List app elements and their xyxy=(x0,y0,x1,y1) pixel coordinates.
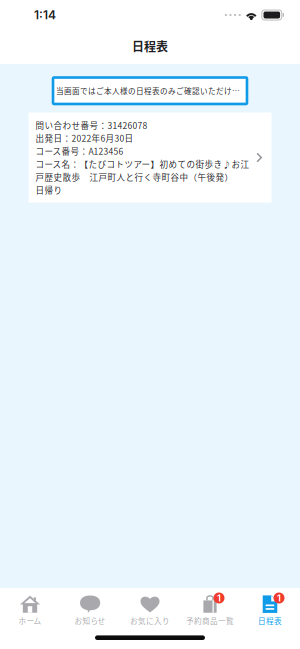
button[interactable]: 問い合わせ番号：31426078 xyxy=(28,112,271,203)
staticText: お知らせ xyxy=(74,615,105,626)
button[interactable]: ホーム xyxy=(0,588,60,629)
staticText: ホーム xyxy=(18,615,41,626)
staticText: 1:14 xyxy=(34,8,56,22)
staticText: 1 xyxy=(217,592,221,604)
staticText: コース番号：A123456 xyxy=(35,145,123,157)
staticText: 問い合わせ番号：31426078 xyxy=(35,119,147,131)
staticText: 戸歴史散歩 江戸町人と行く寺町谷中（午後発） xyxy=(35,171,233,183)
staticText: 日程表 xyxy=(258,615,282,626)
button[interactable]: お気に入り xyxy=(120,588,180,629)
staticText: 当画面ではご本人様の日程表のみご確認いただけます xyxy=(56,85,244,96)
staticText: 日帰り xyxy=(35,184,62,196)
staticText: 1 xyxy=(277,592,281,604)
staticText: 出発日：2022年6月30日 xyxy=(35,132,133,144)
staticText: お気に入り xyxy=(130,615,170,626)
button[interactable]: 1 xyxy=(240,588,300,629)
staticText: コース名：【たびコトツアー】初めての街歩き♪お江 xyxy=(35,158,249,170)
button[interactable]: お知らせ xyxy=(60,588,120,629)
staticText: 予約商品一覧 xyxy=(186,615,234,626)
staticText: 日程表 xyxy=(132,37,168,55)
button[interactable]: 1 xyxy=(180,588,240,629)
